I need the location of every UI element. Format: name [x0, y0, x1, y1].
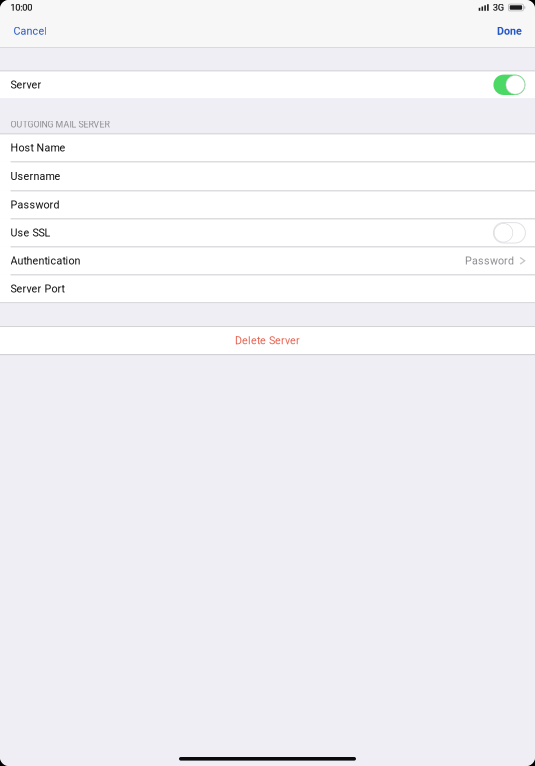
staticText: Delete Server: [235, 334, 300, 347]
staticText: OUTGOING MAIL SERVER: [11, 119, 110, 130]
button[interactable]: Done: [487, 15, 535, 47]
staticText: Password: [11, 198, 60, 211]
button[interactable]: Use SSL: [0, 218, 535, 246]
staticText: Server Port: [11, 282, 65, 295]
button[interactable]: Server: [0, 70, 535, 98]
staticText: Authentication: [11, 254, 81, 267]
staticText: Username: [11, 170, 61, 182]
staticText: Host Name: [11, 141, 66, 154]
button[interactable]: Cancel: [0, 15, 57, 47]
button[interactable]: Authentication: [0, 246, 535, 274]
button[interactable]: Host Name: [0, 133, 535, 161]
staticText: 10:00: [10, 2, 32, 13]
button[interactable]: Username: [0, 161, 535, 190]
staticText: 3G: [493, 2, 504, 13]
staticText: Use SSL: [11, 226, 51, 239]
staticText: Done: [497, 25, 522, 37]
button[interactable]: Delete Server: [0, 326, 535, 354]
button[interactable]: Server Port: [0, 274, 535, 302]
button[interactable]: Password: [0, 190, 535, 218]
staticText: Password: [465, 254, 514, 267]
staticText: Cancel: [13, 25, 47, 37]
staticText: Server: [11, 78, 42, 91]
